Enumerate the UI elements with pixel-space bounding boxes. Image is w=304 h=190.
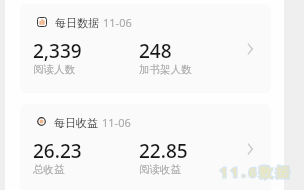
staticText: 248 (139, 38, 172, 64)
staticText: 26.23 (33, 138, 82, 164)
button[interactable]: 每日数据 (20, 4, 271, 93)
staticText: 总收益 (33, 163, 65, 176)
staticText: 每日收益 (54, 116, 98, 130)
staticText: 11-06 (103, 15, 132, 30)
staticText: 加书架人数 (139, 63, 192, 76)
staticText: 每日数据 (55, 16, 99, 30)
staticText: 11.6数据 (220, 163, 293, 181)
staticText: 11.6数据 (220, 163, 293, 181)
staticText: 阅读收益 (139, 163, 181, 176)
button[interactable]: 每日收益 (20, 104, 271, 190)
staticText: 2,339 (33, 38, 82, 64)
staticText: 22.85 (139, 138, 188, 164)
staticText: 阅读人数 (33, 63, 75, 76)
staticText: 11-06 (102, 115, 131, 130)
